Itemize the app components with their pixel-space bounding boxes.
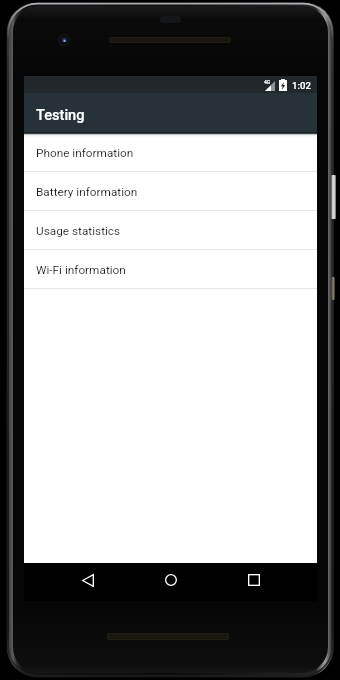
staticText: Wi-Fi information: [36, 263, 126, 277]
staticText: 1:02: [292, 80, 311, 91]
button[interactable]: Back: [70, 562, 106, 598]
button[interactable]: Home: [153, 562, 189, 598]
staticText: Battery information: [36, 185, 138, 199]
staticText: 4G: [264, 79, 271, 85]
button[interactable]: Wi-Fi information: [24, 250, 317, 289]
button[interactable]: Recent apps: [236, 562, 272, 598]
button[interactable]: Usage statistics: [24, 211, 317, 250]
button[interactable]: Phone information: [24, 133, 317, 172]
button[interactable]: Battery information: [24, 172, 317, 211]
staticText: Phone information: [36, 146, 134, 160]
staticText: Testing: [36, 106, 85, 123]
staticText: Usage statistics: [36, 224, 121, 238]
